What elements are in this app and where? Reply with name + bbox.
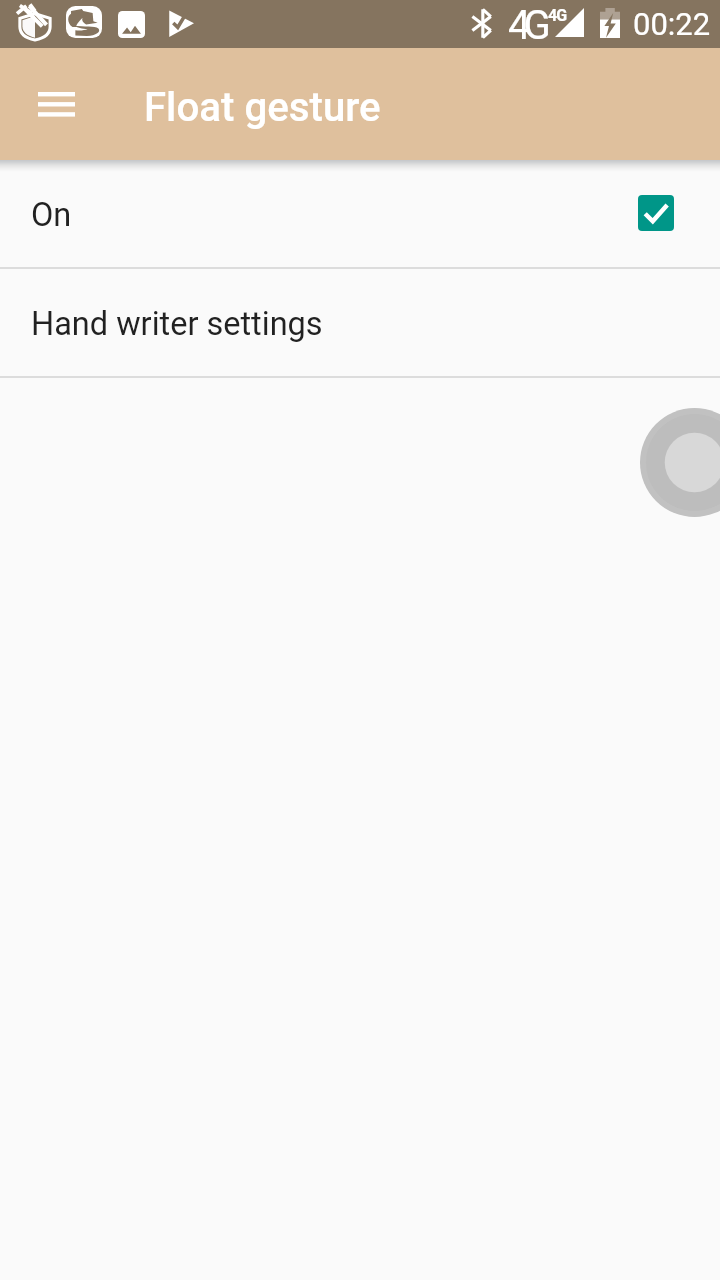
- staticText: On: [31, 196, 72, 234]
- staticText: 4G: [548, 6, 567, 25]
- button[interactable]: On: [0, 160, 720, 267]
- staticText: 4G: [508, 2, 544, 49]
- staticText: 00:22: [633, 6, 711, 42]
- staticText: Float gesture: [144, 84, 381, 131]
- button[interactable]: Floating gesture handle: [640, 408, 720, 517]
- button[interactable]: Open navigation menu: [14, 48, 98, 160]
- button[interactable]: Toggle on: [638, 195, 674, 231]
- button[interactable]: Hand writer settings: [0, 269, 720, 376]
- staticText: Hand writer settings: [31, 305, 323, 343]
